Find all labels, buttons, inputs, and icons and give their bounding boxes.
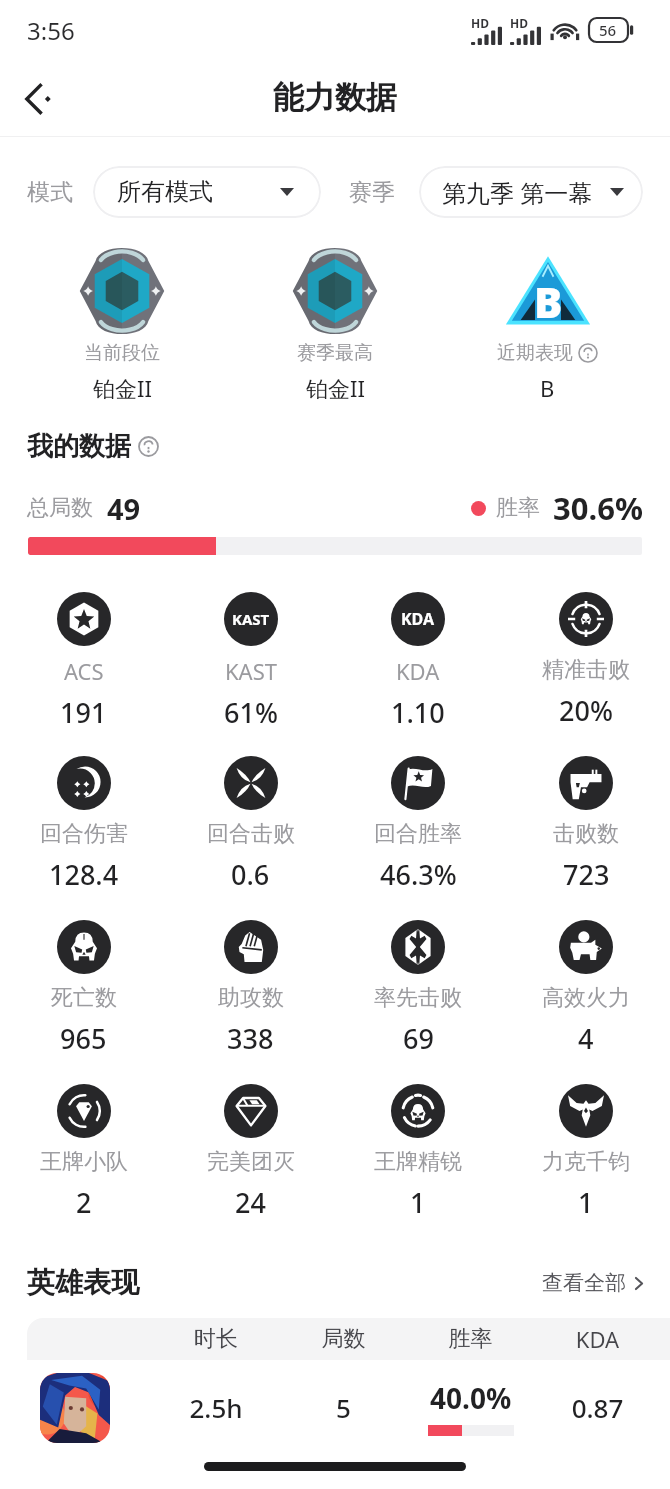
- button[interactable]: 王牌精锐: [334, 1084, 502, 1221]
- staticText: 所有模式: [117, 177, 213, 207]
- button[interactable]: 第九季 第一幕: [419, 166, 643, 218]
- button[interactable]: 回合伤害: [0, 756, 167, 893]
- staticText: 铂金II: [306, 373, 365, 403]
- staticText: 723: [563, 856, 610, 893]
- staticText: 完美团灭: [207, 1148, 295, 1176]
- staticText: 我的数据: [27, 430, 131, 463]
- button[interactable]: 当前段位: [78, 247, 166, 403]
- staticText: 高效火力: [542, 984, 630, 1012]
- button[interactable]: 高效火力: [502, 920, 670, 1057]
- staticText: 模式: [27, 178, 73, 207]
- staticText: 近期表现: [497, 341, 573, 365]
- staticText: 40.0%: [430, 1379, 512, 1417]
- staticText: 力克千钧: [542, 1148, 630, 1176]
- button[interactable]: 助攻数: [167, 920, 334, 1057]
- staticText: 时长: [152, 1325, 280, 1353]
- staticText: 49: [107, 489, 141, 528]
- staticText: 1: [410, 1184, 426, 1221]
- staticText: 69: [403, 1020, 434, 1057]
- staticText: 0.87: [534, 1390, 661, 1425]
- staticText: 4: [578, 1020, 594, 1057]
- button[interactable]: 赛季最高: [291, 247, 379, 403]
- staticText: 965: [60, 1020, 107, 1057]
- staticText: B: [534, 273, 563, 330]
- staticText: 338: [227, 1020, 274, 1057]
- button[interactable]: KDA: [334, 592, 502, 731]
- staticText: 20%: [559, 692, 613, 729]
- staticText: 铂金II: [93, 373, 152, 403]
- staticText: 击败数: [553, 820, 619, 848]
- staticText: 128.4: [49, 856, 119, 893]
- staticText: 46.3%: [380, 856, 457, 893]
- staticText: 死亡数: [51, 984, 117, 1012]
- button[interactable]: 2.5h: [27, 1360, 670, 1455]
- button[interactable]: 所有模式: [93, 166, 321, 218]
- staticText: 率先击败: [374, 984, 462, 1012]
- button[interactable]: 王牌小队: [0, 1084, 167, 1221]
- staticText: KDA: [396, 656, 440, 686]
- button[interactable]: KAST: [167, 592, 334, 731]
- staticText: 当前段位: [84, 341, 160, 365]
- staticText: 回合胜率: [374, 820, 462, 848]
- staticText: B: [540, 373, 555, 403]
- staticText: 30.6%: [553, 487, 643, 529]
- button[interactable]: 回合击败: [167, 756, 334, 893]
- staticText: 赛季最高: [297, 341, 373, 365]
- button[interactable]: Back: [10, 69, 70, 129]
- staticText: 61%: [224, 694, 278, 731]
- staticText: 王牌精锐: [374, 1148, 462, 1176]
- button[interactable]: 回合胜率: [334, 756, 502, 893]
- staticText: 王牌小队: [40, 1148, 128, 1176]
- button[interactable]: B: [497, 247, 598, 403]
- staticText: KDA: [401, 608, 435, 630]
- staticText: 赛季: [349, 178, 395, 207]
- button[interactable]: 精准击败: [502, 592, 670, 729]
- staticText: HD: [510, 15, 528, 31]
- button[interactable]: 死亡数: [0, 920, 167, 1057]
- staticText: 1: [578, 1184, 594, 1221]
- staticText: 0.6: [231, 856, 270, 893]
- staticText: 2.5h: [152, 1390, 280, 1425]
- staticText: 回合伤害: [40, 820, 128, 848]
- staticText: KAST: [225, 656, 277, 686]
- staticText: 精准击败: [542, 656, 630, 684]
- staticText: 2: [76, 1184, 92, 1221]
- staticText: 56: [599, 20, 617, 40]
- staticText: ACS: [64, 656, 104, 686]
- button[interactable]: 查看全部: [538, 1266, 650, 1300]
- button[interactable]: ACS: [0, 592, 167, 731]
- staticText: KAST: [232, 609, 270, 629]
- staticText: 191: [60, 694, 107, 731]
- staticText: 英雄表现: [27, 1265, 139, 1300]
- staticText: 3:56: [27, 14, 75, 47]
- staticText: KDA: [534, 1324, 661, 1354]
- staticText: 查看全部: [542, 1270, 626, 1296]
- staticText: 总局数: [27, 494, 93, 522]
- staticText: 第九季 第一幕: [442, 176, 593, 209]
- staticText: HD: [471, 15, 489, 31]
- staticText: 能力数据: [273, 78, 397, 117]
- staticText: 胜率: [407, 1325, 534, 1353]
- staticText: 助攻数: [218, 984, 284, 1012]
- staticText: 局数: [280, 1325, 407, 1353]
- button[interactable]: 完美团灭: [167, 1084, 334, 1221]
- staticText: 胜率: [496, 494, 540, 522]
- staticText: 1.10: [391, 694, 445, 731]
- button[interactable]: 率先击败: [334, 920, 502, 1057]
- staticText: 回合击败: [207, 820, 295, 848]
- staticText: 24: [235, 1184, 266, 1221]
- button[interactable]: 击败数: [502, 756, 670, 893]
- button[interactable]: 力克千钧: [502, 1084, 670, 1221]
- staticText: 5: [280, 1390, 407, 1425]
